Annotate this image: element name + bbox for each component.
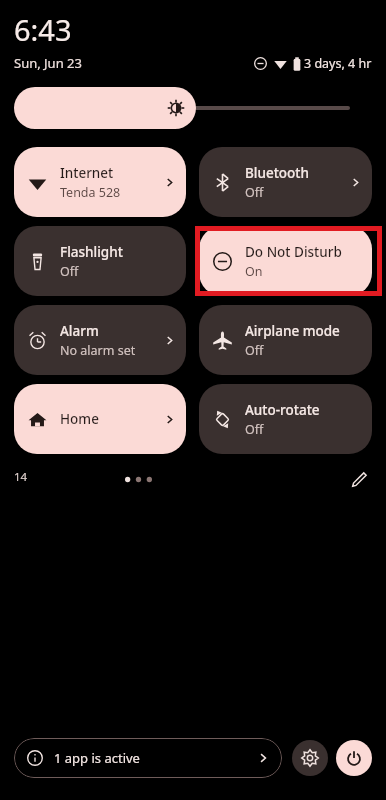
staticText: Off — [245, 342, 264, 359]
staticText: Home — [60, 410, 99, 428]
button[interactable]: Alarm — [14, 305, 186, 375]
staticText: Off — [245, 184, 264, 201]
staticText: Bluetooth — [245, 164, 309, 182]
staticText: Auto-rotate — [245, 401, 320, 419]
staticText: 6:43 — [14, 10, 72, 49]
staticText: Sun, Jun 23 — [14, 54, 82, 72]
button[interactable]: Bluetooth — [199, 147, 372, 217]
button[interactable]: Internet — [14, 147, 186, 217]
staticText: Off — [60, 263, 79, 280]
staticText: Alarm — [60, 322, 99, 340]
button[interactable]: 1 app is active — [14, 738, 282, 778]
button[interactable]: Home — [14, 384, 186, 454]
button[interactable]: Edit tiles — [346, 466, 372, 492]
button[interactable]: Do Not Disturb — [199, 226, 372, 296]
staticText: Flashlight — [60, 243, 123, 261]
staticText: 1 app is active — [54, 749, 140, 767]
staticText: Airplane mode — [245, 322, 340, 340]
button[interactable]: Flashlight — [14, 226, 186, 296]
button[interactable]: Settings — [292, 740, 328, 776]
staticText: Internet — [60, 164, 114, 182]
staticText: No alarm set — [60, 342, 136, 359]
staticText: On — [245, 263, 263, 280]
button[interactable]: Power — [336, 740, 372, 776]
staticText: Do Not Disturb — [245, 243, 342, 261]
staticText: Off — [245, 421, 264, 438]
button[interactable]: Auto-rotate — [199, 384, 372, 454]
button[interactable]: Brightness — [14, 87, 372, 129]
button[interactable]: Airplane mode — [199, 305, 372, 375]
staticText: 14 (AP2A.240605.024) — [14, 469, 119, 485]
staticText: Tenda 528 — [60, 184, 121, 201]
staticText: 3 days, 4 hr — [304, 55, 372, 72]
